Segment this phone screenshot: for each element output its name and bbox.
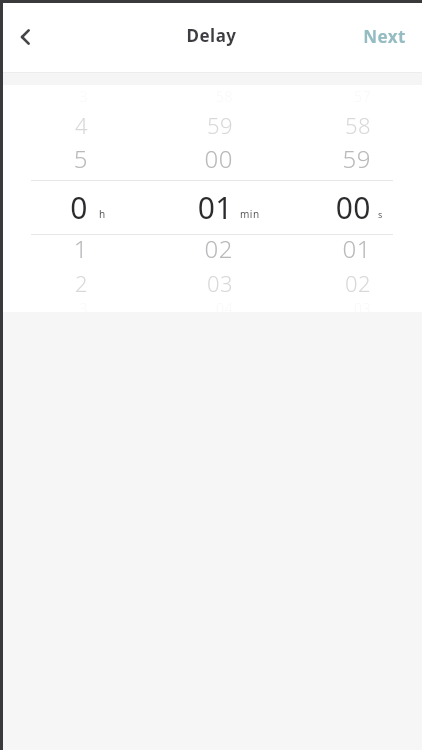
button[interactable]: 00 [0, 185, 422, 230]
staticText: 03 [0, 299, 371, 312]
button[interactable]: 57 [0, 86, 422, 107]
staticText: 02 [0, 268, 371, 298]
button[interactable]: 4 [0, 108, 422, 141]
staticText: 0 [0, 187, 88, 228]
staticText: 57 [0, 87, 371, 106]
staticText: 00 [0, 142, 233, 175]
staticText: h [99, 207, 106, 221]
button[interactable]: 01 [0, 185, 422, 230]
button[interactable]: 2 [0, 266, 422, 299]
staticText: 03 [0, 268, 233, 298]
staticText: 04 [0, 299, 233, 312]
button[interactable]: 0 [0, 185, 422, 230]
button[interactable]: 3 [0, 298, 422, 312]
staticText: 3 [0, 299, 88, 312]
staticText: 59 [0, 142, 371, 175]
staticText: 01 [0, 187, 233, 228]
button[interactable]: 01 [0, 230, 422, 266]
staticText: 58 [0, 110, 371, 140]
button[interactable]: Back [4, 15, 48, 59]
staticText: 02 [0, 232, 233, 265]
button[interactable]: 59 [0, 108, 422, 141]
staticText: 00 [0, 187, 371, 228]
button[interactable]: 02 [0, 230, 422, 266]
staticText: Delay [186, 24, 237, 47]
button[interactable]: 5 [0, 140, 422, 176]
button[interactable]: 59 [0, 140, 422, 176]
button[interactable]: 03 [0, 298, 422, 312]
button[interactable]: 58 [0, 108, 422, 141]
staticText: 1 [0, 232, 88, 265]
button[interactable]: 58 [0, 86, 422, 107]
button[interactable]: 03 [0, 266, 422, 299]
button[interactable]: 04 [0, 298, 422, 312]
staticText: s [378, 208, 383, 220]
staticText: 3 [0, 87, 88, 106]
button[interactable]: Next [347, 13, 422, 60]
staticText: 5 [0, 142, 88, 175]
staticText: 4 [0, 110, 88, 140]
button[interactable]: 1 [0, 230, 422, 266]
staticText: 01 [0, 232, 371, 265]
staticText: min [240, 207, 260, 221]
staticText: Next [363, 25, 406, 48]
button[interactable]: 02 [0, 266, 422, 299]
staticText: 58 [0, 87, 233, 106]
button[interactable]: 00 [0, 140, 422, 176]
staticText: 59 [0, 110, 233, 140]
staticText: 2 [0, 268, 88, 298]
button[interactable]: 3 [0, 86, 422, 107]
